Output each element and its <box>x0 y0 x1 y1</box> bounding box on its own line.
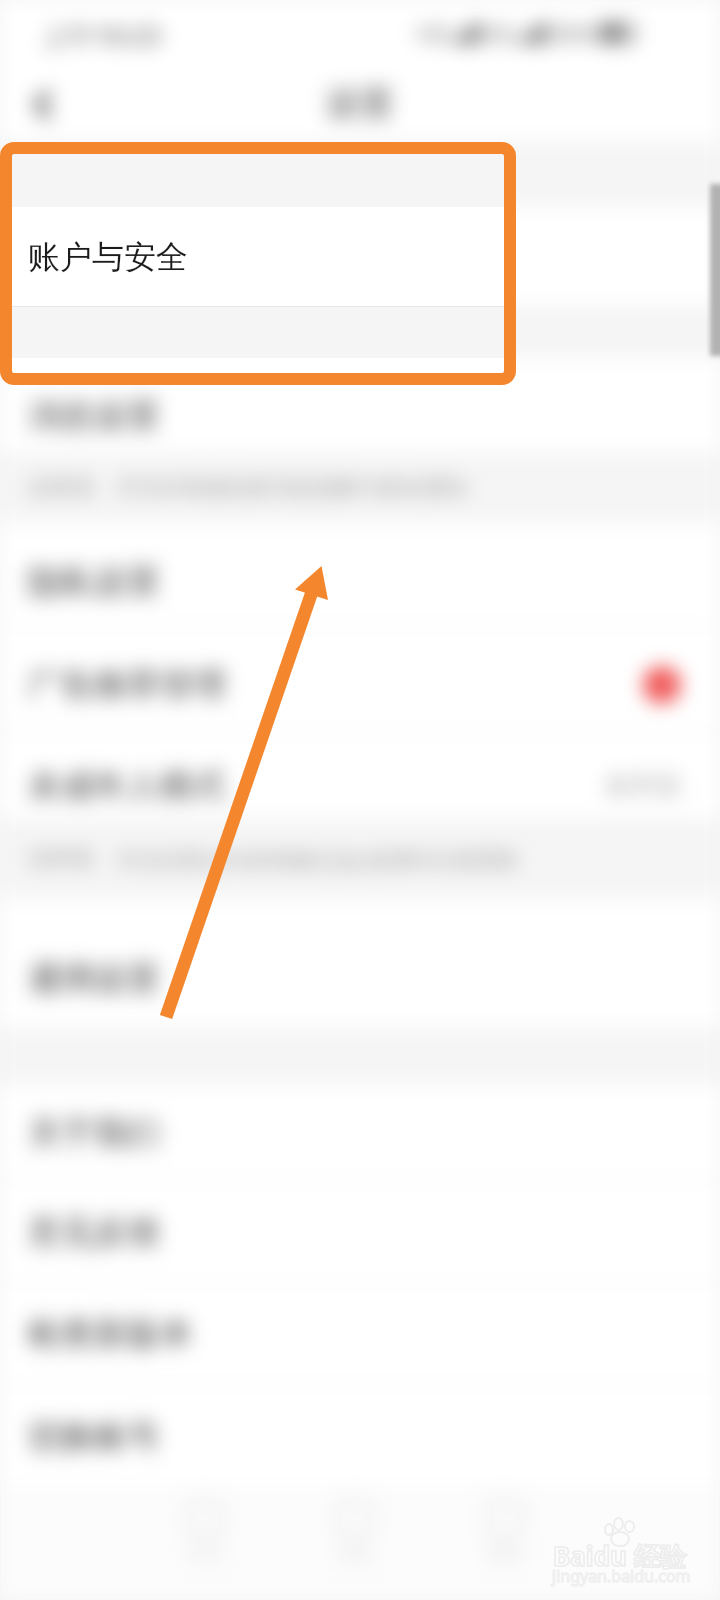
staticText: 账户与安全 <box>28 237 188 277</box>
staticText: 设置项 <box>28 474 94 502</box>
staticText: 意见反馈 <box>28 1211 160 1253</box>
button[interactable]: 账户与安全 <box>0 207 720 307</box>
button[interactable]: 未成年人模式 <box>0 733 720 818</box>
staticText: 3 <box>656 670 669 700</box>
staticText: HD <box>417 18 450 48</box>
staticText: 意见反馈 <box>28 1211 160 1253</box>
button[interactable]: 通用设置 <box>0 899 720 1027</box>
staticText: 广告推荐管理 <box>28 664 226 706</box>
staticText: 检查新版本 <box>28 1313 193 1355</box>
staticText: 86% <box>553 18 597 48</box>
staticText: 检查新版本 <box>28 1313 193 1355</box>
staticText: 上午10:23 <box>42 17 161 53</box>
button[interactable]: 隐私设置 <box>0 523 720 626</box>
staticText: HD <box>417 18 450 48</box>
staticText: 隐私设置 <box>28 561 160 603</box>
staticText: 切换账号 <box>28 1416 160 1458</box>
button[interactable]: 检查新版本 <box>0 1283 720 1385</box>
button[interactable]: Back <box>16 78 70 132</box>
staticText: 开启后将接收新消息提醒与推送通知 <box>116 474 468 502</box>
button[interactable]: 意见反馈 <box>0 1180 720 1283</box>
staticText: 隐私设置 <box>28 561 160 603</box>
button[interactable]: 检查新版本 <box>0 1283 720 1385</box>
staticText: 开启后将接收新消息提醒与推送通知 <box>116 474 468 502</box>
staticText: 说明项 <box>28 845 94 873</box>
button[interactable]: Back <box>16 78 70 132</box>
staticText: 86% <box>553 18 597 48</box>
staticText: 通用设置 <box>28 958 160 1000</box>
staticText: 设置 <box>326 82 394 125</box>
button[interactable]: 关于我们 <box>0 1085 720 1180</box>
staticText: 上午10:23 <box>42 17 161 53</box>
staticText: 4G <box>486 18 515 48</box>
staticText: 通用设置 <box>28 958 160 1000</box>
staticText: 说明项 <box>28 845 94 873</box>
staticText: jingyan.baidu.com <box>552 1565 691 1587</box>
staticText: 广告推荐管理 <box>28 664 226 706</box>
staticText: 未开启 <box>605 770 680 801</box>
staticText: Baidu 经验 <box>553 1538 686 1574</box>
staticText: 消息设置 <box>28 395 160 437</box>
button[interactable]: 广告推荐管理 <box>0 626 720 733</box>
button[interactable]: 账户与安全 <box>0 207 720 307</box>
staticText: 未成年人模式 <box>28 765 226 807</box>
staticText: 关于我们 <box>28 1112 160 1154</box>
staticText: 账户与安全 <box>28 237 188 277</box>
button[interactable]: 关于我们 <box>0 1085 720 1180</box>
staticText: 切换账号 <box>28 1416 160 1458</box>
staticText: 未开启 <box>605 770 680 801</box>
staticText: 3 <box>656 670 669 700</box>
button[interactable]: 意见反馈 <box>0 1180 720 1283</box>
staticText: 未成年人模式 <box>28 765 226 807</box>
staticText: 设置 <box>326 82 394 125</box>
button[interactable]: 通用设置 <box>0 899 720 1027</box>
button[interactable]: 切换账号 <box>0 1385 720 1485</box>
staticText: 开启后部分内容将被过滤,使用时长将受限 <box>116 844 518 874</box>
staticText: 关于我们 <box>28 1112 160 1154</box>
button[interactable]: 隐私设置 <box>0 523 720 626</box>
staticText: 消息设置 <box>28 395 160 437</box>
button[interactable]: 未成年人模式 <box>0 733 720 818</box>
button[interactable]: 切换账号 <box>0 1385 720 1485</box>
button[interactable]: 消息设置 <box>0 358 720 452</box>
staticText: 开启后部分内容将被过滤,使用时长将受限 <box>116 844 518 874</box>
staticText: 4G <box>486 18 515 48</box>
button[interactable]: 消息设置 <box>0 358 720 452</box>
button[interactable]: 广告推荐管理 <box>0 626 720 733</box>
staticText: 设置项 <box>28 474 94 502</box>
